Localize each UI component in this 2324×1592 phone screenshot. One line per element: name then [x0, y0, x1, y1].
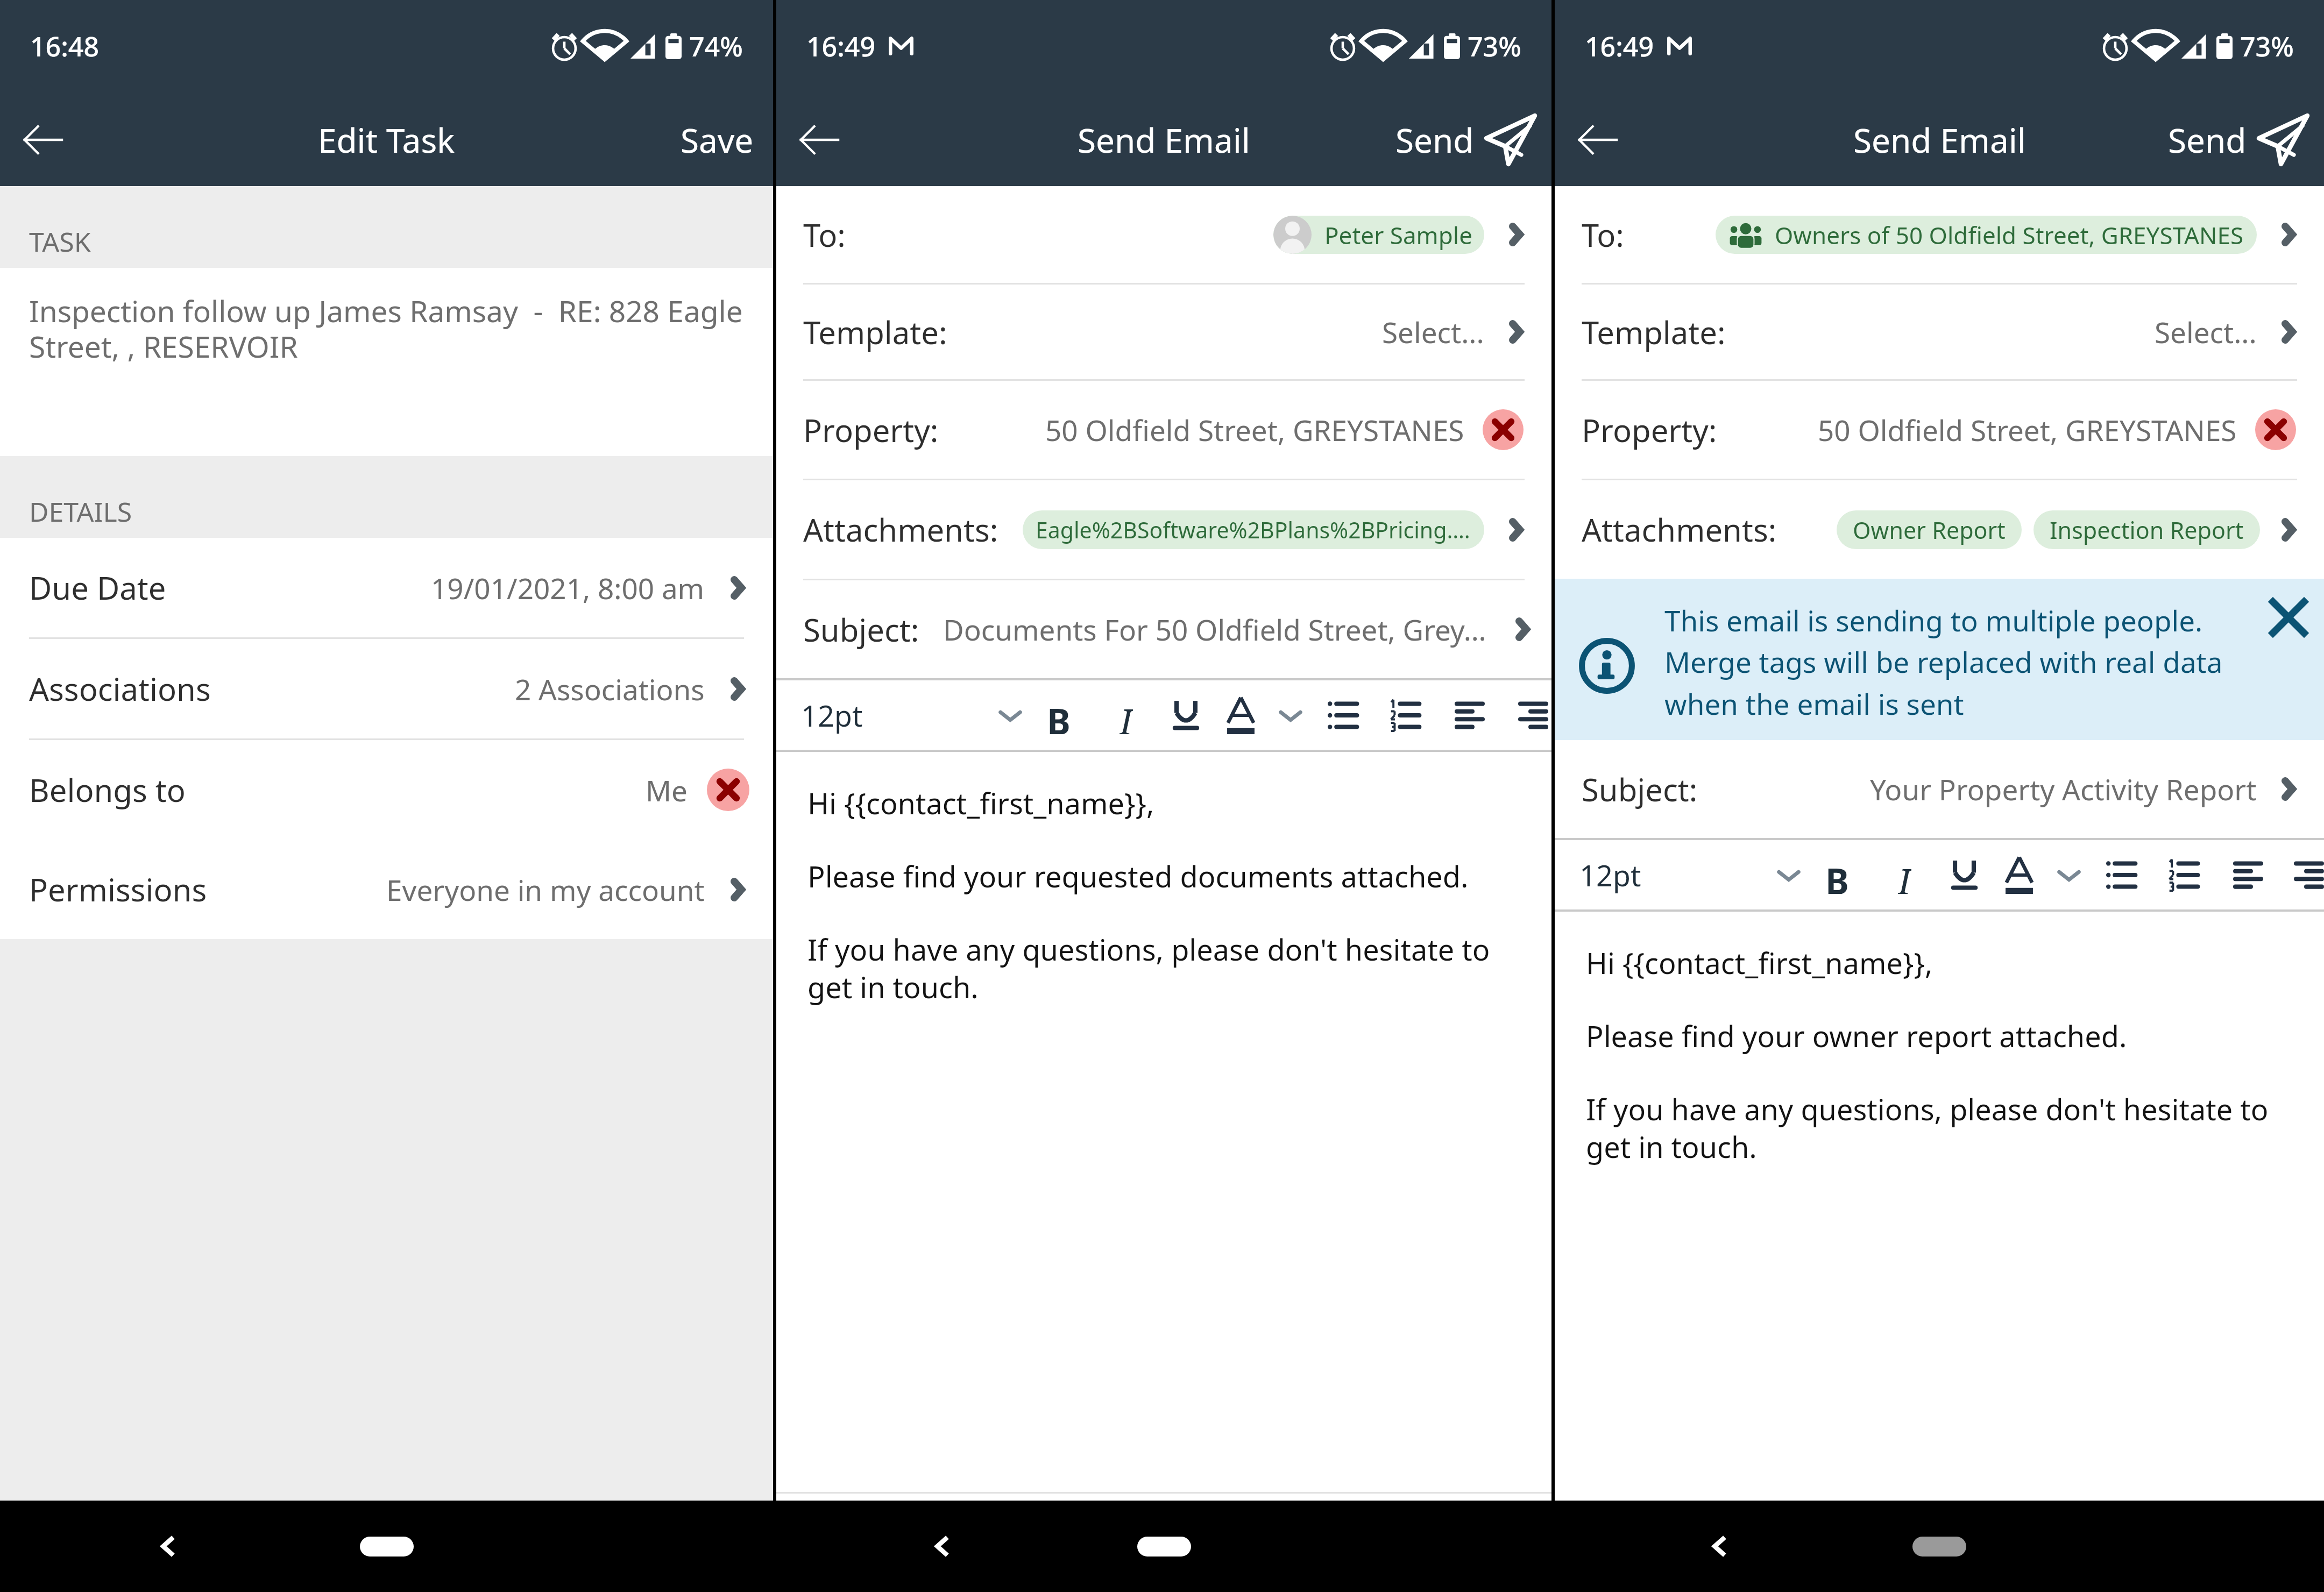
staticText: 12pt — [801, 695, 863, 735]
other: Back — [22, 119, 64, 161]
other: Remove — [2255, 409, 2296, 450]
staticText: I — [1898, 856, 1911, 894]
button[interactable]: More colours — [2053, 859, 2085, 891]
button[interactable]: Send — [1395, 113, 1537, 167]
button[interactable]: Subject: — [776, 580, 1551, 678]
staticText: DETAILS — [29, 493, 132, 530]
staticText: Documents For 50 Oldfield Street, Grey… — [943, 610, 1486, 649]
button[interactable]: Font size — [1773, 859, 1805, 891]
button[interactable]: Due Date — [0, 538, 773, 637]
button[interactable]: Permissions — [0, 840, 773, 939]
button[interactable]: To: — [776, 186, 1551, 283]
staticText: To: — [803, 214, 846, 256]
button[interactable]: Home — [360, 1537, 414, 1557]
staticText: Please find your requested documents att… — [807, 856, 1469, 896]
button[interactable]: Property: — [1555, 381, 2324, 479]
staticText: I — [1120, 696, 1133, 734]
button[interactable]: Associations — [0, 639, 773, 738]
button[interactable]: Send — [2168, 113, 2310, 167]
staticText: Hi {{contact_first_name}}, — [1586, 943, 1933, 983]
button[interactable]: Template: — [1555, 285, 2324, 379]
staticText: Peter Sample — [1324, 219, 1472, 251]
button[interactable]: Text colour — [1222, 696, 1259, 734]
staticText: 12pt — [1579, 855, 1641, 895]
staticText: Attachments: — [803, 508, 998, 551]
button[interactable]: Property: — [776, 381, 1551, 479]
staticText: Edit Task — [318, 117, 455, 162]
button[interactable]: B — [1040, 696, 1078, 734]
staticText: 74% — [689, 28, 743, 65]
staticText: Owner Report — [1853, 514, 2006, 546]
button[interactable]: Bulleted list — [1324, 696, 1362, 734]
staticText: 50 Oldfield Street, GREYSTANES — [1045, 410, 1464, 449]
other: Remove — [707, 769, 749, 811]
staticText: Please find your owner report attached. — [1586, 1016, 2127, 1056]
button[interactable]: Underline — [1167, 696, 1204, 734]
staticText: Subject: — [803, 608, 919, 651]
staticText: Send — [2168, 117, 2247, 162]
button[interactable]: Dismiss — [2263, 592, 2314, 643]
staticText: Attachments: — [1582, 508, 1777, 551]
staticText: Template: — [1582, 311, 1726, 353]
staticText: Subject: — [1582, 768, 1698, 811]
staticText: Select... — [2155, 312, 2257, 351]
button[interactable]: I — [1886, 856, 1923, 894]
staticText: B — [1825, 856, 1849, 894]
staticText: Inspection follow up James Ramsay - RE: … — [29, 290, 752, 366]
button[interactable]: Align right — [1515, 696, 1551, 734]
staticText: 73% — [2240, 28, 2294, 65]
staticText: To: — [1582, 214, 1624, 256]
button[interactable]: Home — [1912, 1537, 1966, 1557]
staticText: Hi {{contact_first_name}}, — [807, 783, 1154, 823]
button[interactable]: Numbered list — [2165, 856, 2202, 894]
button[interactable]: Attachments: — [776, 480, 1551, 579]
button[interactable]: Belongs to — [0, 740, 773, 840]
button[interactable]: Subject: — [1555, 740, 2324, 838]
button[interactable]: More colours — [1274, 699, 1307, 731]
staticText: Owners of 50 Oldfield Street, GREYSTANES — [1775, 219, 2244, 251]
button[interactable]: Back — [1572, 114, 1624, 166]
staticText: Save — [681, 117, 754, 162]
staticText: TASK — [29, 223, 91, 260]
staticText: Send Email — [1078, 117, 1250, 162]
staticText: This email is sending to multiple people… — [1664, 601, 2235, 723]
staticText: 16:49 — [806, 28, 875, 65]
button[interactable]: Home — [1137, 1537, 1191, 1557]
button[interactable]: Back — [1689, 1517, 1748, 1576]
staticText: If you have any questions, please don't … — [1586, 1089, 2299, 1167]
staticText: Template: — [803, 311, 947, 353]
staticText: Eagle%2BSoftware%2BPlans%2BPricing…. — [1036, 515, 1470, 545]
button[interactable]: Underline — [1945, 856, 1983, 894]
button[interactable]: Save — [681, 117, 754, 162]
button[interactable]: Template: — [776, 285, 1551, 379]
button[interactable]: Back — [793, 114, 845, 166]
button[interactable]: Font size — [994, 699, 1026, 731]
button[interactable]: To: — [1555, 186, 2324, 283]
staticText: Me — [646, 771, 688, 809]
other: Send — [2256, 113, 2310, 167]
staticText: Select... — [1382, 312, 1484, 351]
other: Send — [1484, 113, 1537, 167]
other: Back — [1577, 119, 1619, 161]
button[interactable]: Back — [138, 1517, 197, 1576]
staticText: 19/01/2021, 8:00 am — [431, 568, 705, 607]
staticText: Send — [1395, 117, 1474, 162]
button[interactable]: Back — [17, 114, 69, 166]
button[interactable]: Text colour — [2000, 856, 2038, 894]
staticText: Belongs to — [29, 769, 186, 811]
button[interactable]: Bulleted list — [2102, 856, 2140, 894]
button[interactable]: B — [1818, 856, 1856, 894]
button[interactable]: Align left — [1451, 696, 1489, 734]
button[interactable]: Numbered list — [1386, 696, 1424, 734]
staticText: 50 Oldfield Street, GREYSTANES — [1818, 410, 2237, 449]
other: Back — [798, 119, 840, 161]
button[interactable]: I — [1107, 696, 1145, 734]
staticText: Inspection Report — [2050, 514, 2244, 546]
button[interactable]: Align right — [2293, 856, 2324, 894]
button[interactable]: Attachments: — [1555, 480, 2324, 579]
staticText: 16:48 — [30, 28, 99, 65]
button[interactable]: Align left — [2229, 856, 2267, 894]
staticText: 73% — [1468, 28, 1521, 65]
staticText: 2 Associations — [515, 670, 705, 708]
button[interactable]: Back — [912, 1517, 971, 1576]
